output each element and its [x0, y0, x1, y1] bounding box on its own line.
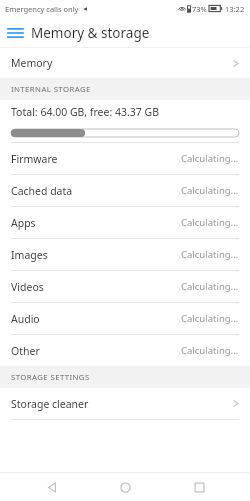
button[interactable]: Cached data	[0, 175, 250, 206]
staticText: Calculating...	[181, 280, 239, 293]
staticText: Apps	[11, 216, 36, 230]
staticText: Total: 64.00 GB, free: 43.37 GB	[11, 105, 160, 119]
staticText: 73%	[192, 4, 207, 14]
staticText: Calculating...	[181, 312, 239, 325]
staticText: Storage cleaner	[11, 397, 89, 411]
staticText: Memory	[11, 56, 53, 70]
staticText: Calculating...	[181, 152, 239, 165]
button[interactable]: Videos	[0, 271, 250, 302]
button[interactable]: Images	[0, 239, 250, 270]
staticText: INTERNAL STORAGE	[11, 84, 91, 95]
staticText: Calculating...	[181, 216, 239, 229]
staticText: Emergency calls only	[5, 4, 79, 14]
staticText: Cached data	[11, 184, 73, 198]
staticText: Firmware	[11, 152, 58, 166]
button[interactable]: Apps	[0, 207, 250, 238]
button[interactable]: Firmware	[0, 143, 250, 174]
button[interactable]: Audio	[0, 303, 250, 334]
button[interactable]: Home	[103, 473, 147, 501]
staticText: Other	[11, 344, 40, 358]
staticText: Calculating...	[181, 344, 239, 357]
staticText: Memory & storage	[31, 24, 150, 42]
button[interactable]: Open navigation menu	[0, 17, 31, 48]
staticText: 13:22	[225, 4, 245, 14]
button[interactable]: Memory	[0, 48, 250, 78]
button[interactable]: Storage cleaner	[0, 388, 250, 419]
button[interactable]: Recent apps	[177, 473, 221, 501]
staticText: Audio	[11, 312, 40, 326]
button[interactable]: Other	[0, 335, 250, 366]
staticText: Calculating...	[181, 184, 239, 197]
staticText: Images	[11, 248, 48, 262]
staticText: STORAGE SETTINGS	[11, 372, 90, 383]
staticText: Videos	[11, 280, 44, 294]
button[interactable]: Back	[30, 473, 74, 501]
staticText: Calculating...	[181, 248, 239, 261]
